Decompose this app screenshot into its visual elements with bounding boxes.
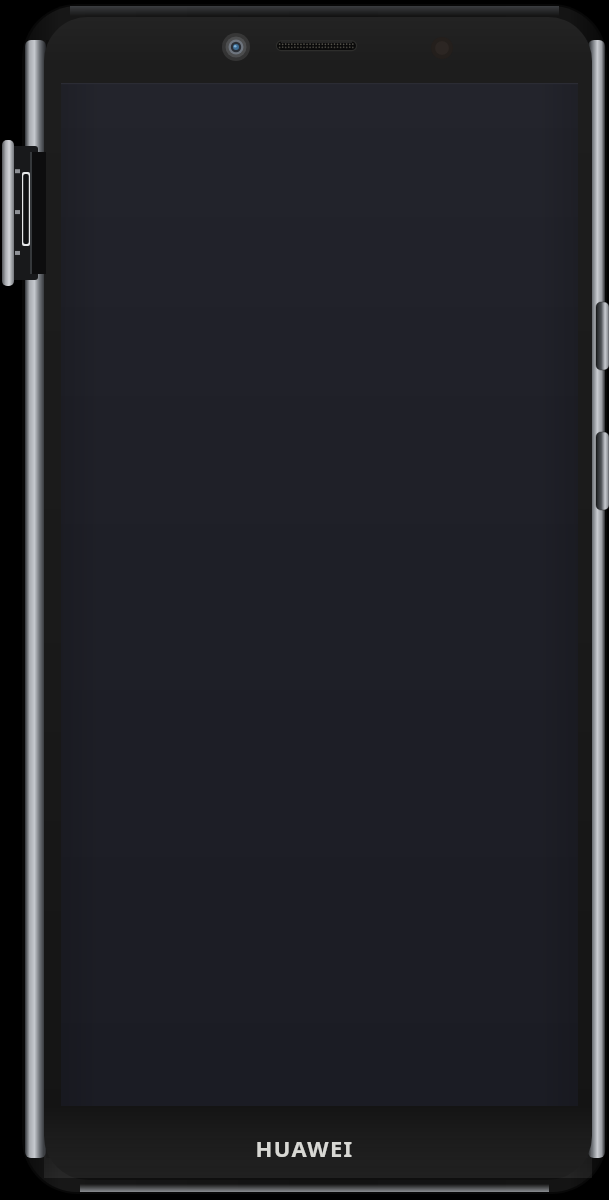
staticText: HUAWEI (0, 1133, 609, 1163)
button[interactable]: Huawei smartphone front view (0, 0, 609, 1200)
